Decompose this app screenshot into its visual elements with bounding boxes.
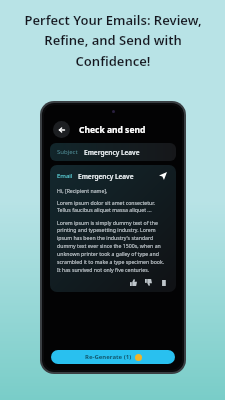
button[interactable]: Copy xyxy=(159,278,168,287)
staticText: Check and send xyxy=(79,124,146,136)
staticText: Re-Generate (1) xyxy=(85,353,132,361)
button[interactable]: Send xyxy=(157,170,169,182)
button[interactable]: Back xyxy=(53,121,70,138)
staticText: Email xyxy=(57,172,73,180)
staticText: Perfect Your Emails: Review, Refine, and… xyxy=(24,11,202,70)
staticText: Emergency Leave xyxy=(84,148,140,157)
staticText: Emergency Leave xyxy=(78,172,134,181)
button[interactable]: Subject xyxy=(50,143,176,161)
staticText: Subject xyxy=(57,148,78,156)
button[interactable]: Thumbs up xyxy=(129,278,138,287)
button[interactable]: Thumbs down xyxy=(144,278,153,287)
button[interactable]: Re-Generate (1) xyxy=(51,350,175,364)
staticText: Hi, [Recipient name], xyxy=(57,187,108,194)
staticText: Lorem ipsum dolor sit amet consectetur. … xyxy=(57,199,169,214)
staticText: Lorem ipsum is simply dummy text of the … xyxy=(57,219,169,274)
